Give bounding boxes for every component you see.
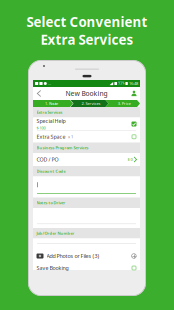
staticText: Business Program Services bbox=[36, 145, 88, 150]
staticText: 93% bbox=[118, 82, 124, 85]
staticText: Extra Services bbox=[40, 31, 133, 48]
button[interactable]: Special Help bbox=[33, 117, 140, 130]
button[interactable]: Save Booking bbox=[33, 264, 140, 269]
staticText: Discount Code bbox=[36, 169, 65, 174]
staticText: COD / PO bbox=[36, 156, 58, 163]
button[interactable]: Add Photos or Files (3) bbox=[33, 247, 140, 264]
staticText: Add Photos or Files (3) bbox=[46, 252, 99, 260]
staticText: $ 100 bbox=[36, 125, 45, 130]
staticText: 1. Route bbox=[45, 101, 58, 106]
staticText: Select Convenient bbox=[26, 13, 147, 31]
staticText: 3. Price bbox=[118, 101, 131, 106]
staticText: Save Booking bbox=[36, 264, 68, 272]
staticText: 2. Services bbox=[81, 101, 100, 106]
staticText: New Booking bbox=[65, 89, 107, 98]
staticText: x 1 bbox=[68, 134, 73, 139]
staticText: Job/Order Number bbox=[36, 231, 74, 236]
staticText: Extra Space bbox=[36, 133, 65, 140]
button[interactable]: COD / PO bbox=[33, 153, 140, 166]
staticText: Special Help bbox=[36, 117, 65, 125]
button[interactable]: Account bbox=[128, 87, 140, 100]
staticText: $ 0 bbox=[128, 157, 133, 162]
staticText: 16:48 bbox=[129, 81, 138, 86]
staticText: Extra Services bbox=[36, 110, 62, 115]
button[interactable]: Back bbox=[33, 87, 45, 100]
staticText: ... bbox=[48, 81, 51, 86]
button[interactable]: Extra Space bbox=[33, 131, 140, 142]
staticText: Notes to Driver bbox=[36, 200, 65, 205]
